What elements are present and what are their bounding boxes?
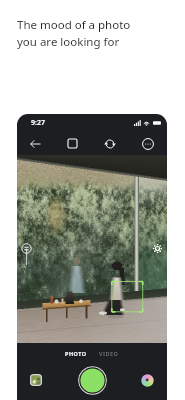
button[interactable]: Switch camera	[91, 132, 129, 155]
button[interactable]: VIDEO	[94, 348, 124, 359]
staticText: The mood of a photo you are looking for	[17, 17, 131, 50]
button[interactable]: PHOTO	[60, 348, 92, 359]
button[interactable]: Take photo	[78, 366, 107, 395]
button[interactable]: More options	[129, 132, 167, 155]
staticText: VIDEO	[99, 350, 119, 357]
staticText: PHOTO	[65, 350, 87, 357]
button[interactable]: Back	[17, 132, 54, 155]
button[interactable]: Filters	[140, 373, 155, 388]
staticText: 9:27	[31, 118, 45, 128]
button[interactable]: Gallery	[30, 374, 42, 386]
button[interactable]: Aspect ratio	[54, 132, 91, 155]
